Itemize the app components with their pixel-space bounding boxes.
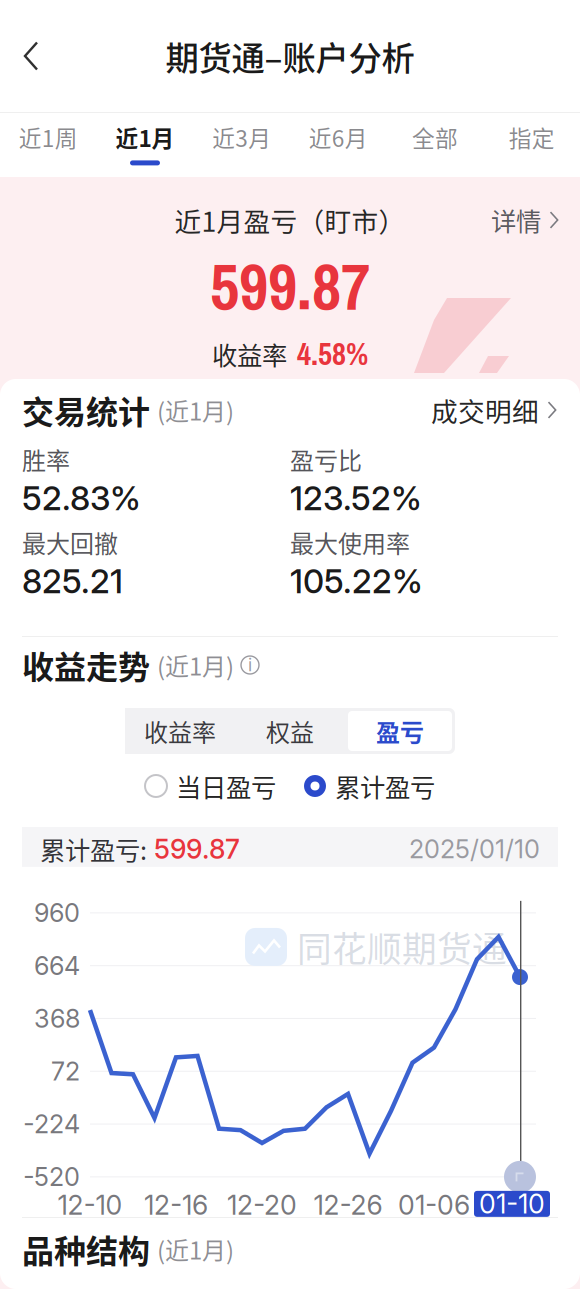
staticText: 近1周	[19, 121, 78, 153]
staticText: i	[248, 654, 252, 675]
staticText: -224	[23, 1109, 80, 1139]
staticText: 599.87	[147, 833, 240, 865]
staticText: 599.87	[210, 243, 370, 329]
staticText: 累计盈亏:	[40, 831, 147, 867]
staticText: 盈亏比	[290, 442, 362, 477]
staticText: 825.21	[22, 561, 123, 601]
staticText: 交易统计	[22, 387, 150, 433]
button[interactable]: 近3月	[193, 113, 290, 177]
button[interactable]: 近1月	[97, 113, 193, 177]
staticText: 最大使用率	[290, 525, 410, 560]
button[interactable]: 指定	[483, 113, 580, 177]
staticText: 期货通–账户分析	[165, 32, 414, 80]
staticText: 权益	[266, 714, 314, 748]
staticText: (近1月)	[157, 393, 234, 427]
button[interactable]: 详情	[491, 199, 580, 241]
staticText: 近1月	[115, 121, 174, 153]
staticText: 368	[34, 1003, 80, 1034]
staticText: 12-16	[144, 1189, 208, 1221]
staticText: 12-26	[313, 1189, 382, 1221]
button[interactable]: 成交明细	[431, 389, 558, 431]
button[interactable]: 累计盈亏	[304, 768, 435, 804]
staticText: 664	[34, 950, 80, 981]
staticText: (近1月)	[157, 648, 234, 682]
staticText: 成交明细	[431, 391, 539, 429]
staticText: 960	[34, 897, 80, 928]
staticText: 收益率	[144, 714, 216, 748]
button[interactable]: 盈亏	[345, 708, 455, 754]
staticText: 52.83%	[22, 478, 141, 518]
staticText: 品种结构	[22, 1226, 150, 1272]
staticText: 近3月	[212, 121, 271, 153]
button[interactable]: 当日盈亏	[145, 768, 276, 804]
button[interactable]: 收益率	[125, 708, 235, 754]
staticText: 同花顺期货通	[297, 922, 507, 972]
staticText: 4.58%	[297, 333, 368, 374]
staticText: 近6月	[309, 121, 368, 153]
staticText: 最大回撤	[22, 525, 118, 560]
staticText: 123.52%	[290, 478, 422, 518]
staticText: 收益走势	[22, 642, 150, 688]
button[interactable]: 权益	[235, 708, 345, 754]
button[interactable]: Back	[0, 0, 62, 112]
staticText: 12-10	[57, 1189, 122, 1221]
staticText: -520	[23, 1161, 80, 1192]
staticText: 盈亏	[376, 714, 424, 748]
staticText: 胜率	[22, 442, 70, 477]
staticText: 01-06	[398, 1189, 470, 1221]
staticText: 72	[51, 1056, 80, 1087]
staticText: 105.22%	[290, 561, 423, 601]
staticText: 累计盈亏	[335, 768, 435, 804]
staticText: 全部	[412, 121, 458, 153]
staticText: 当日盈亏	[176, 768, 276, 804]
staticText: 01-10	[479, 1188, 545, 1220]
staticText: 详情	[491, 202, 541, 238]
staticText: 12-20	[227, 1189, 297, 1221]
button[interactable]: 近6月	[290, 113, 387, 177]
button[interactable]: 全部	[387, 113, 483, 177]
staticText: (近1月)	[157, 1232, 234, 1266]
staticText: 指定	[509, 121, 555, 153]
staticText: 收益率	[212, 335, 287, 372]
staticText: 近1月盈亏（盯市）	[174, 201, 405, 239]
button[interactable]: 近1周	[0, 113, 97, 177]
staticText: 2025/01/10	[409, 834, 540, 864]
